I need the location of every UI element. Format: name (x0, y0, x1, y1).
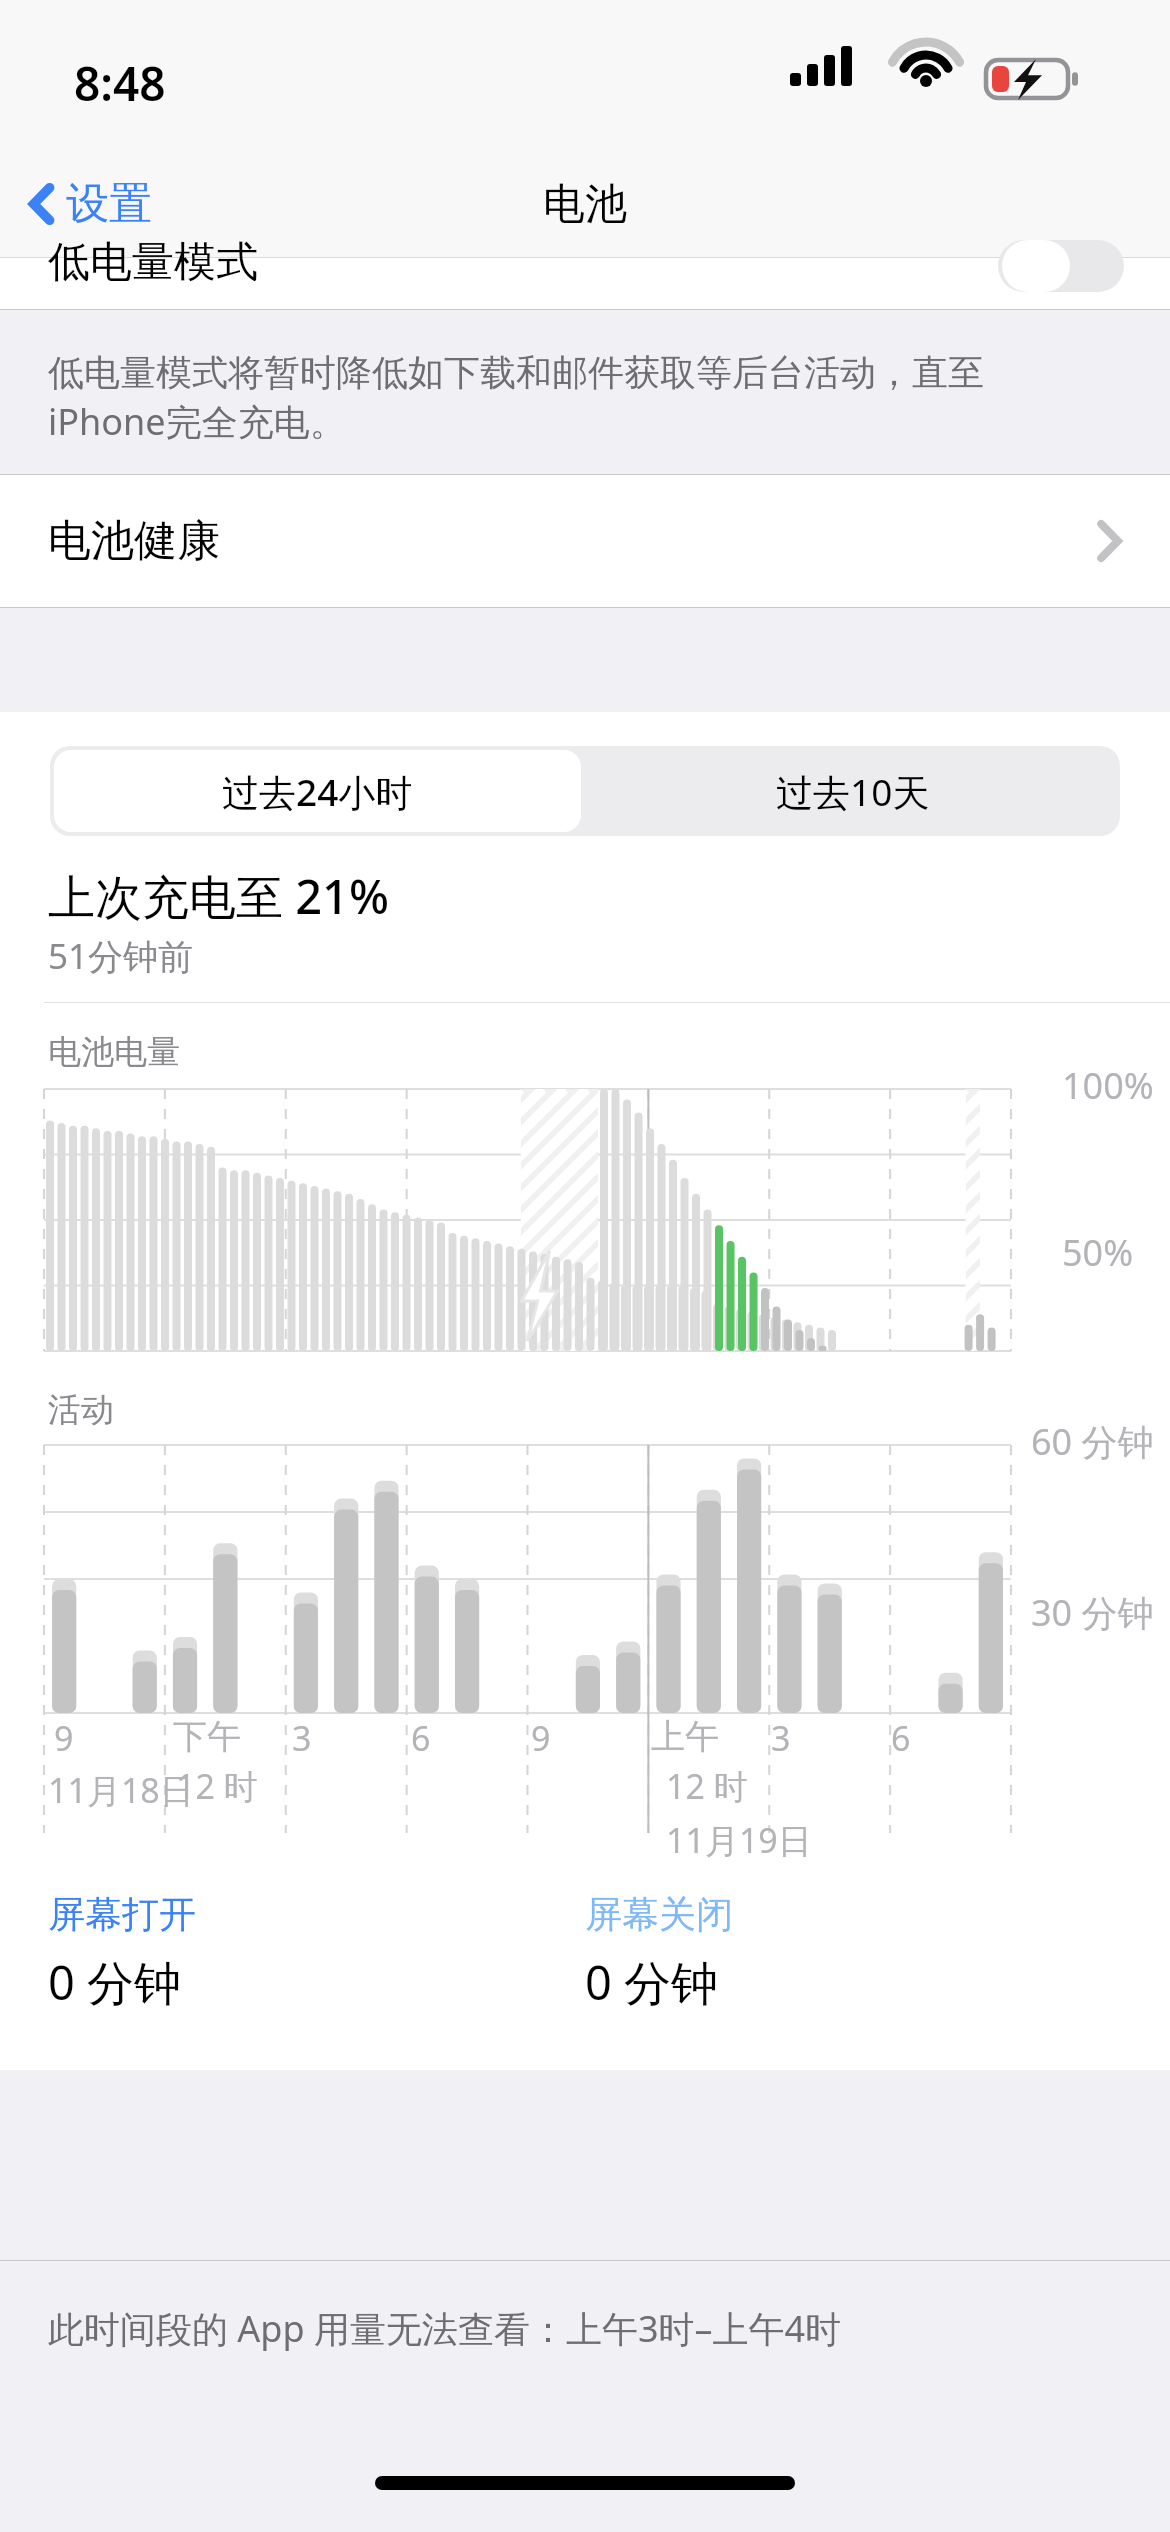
staticText: 电池电量 (48, 1031, 180, 1073)
staticText: 过去10天 (776, 766, 930, 817)
staticText: 11月18日 (48, 1767, 194, 1813)
other: 低电量模式 (998, 240, 1124, 292)
staticText: 30 分钟 (1031, 1588, 1154, 1637)
staticText: 12 时 (176, 1763, 258, 1809)
staticText: 0 分钟 (585, 1950, 719, 2014)
staticText: 51分钟前 (48, 932, 194, 980)
staticText: 屏幕打开 (48, 1891, 196, 1938)
button[interactable]: 屏幕关闭 (585, 1891, 1122, 2014)
staticText: 低电量模式将暂时降低如下载和邮件获取等后台活动，直至 iPhone完全充电。 (48, 350, 984, 445)
staticText: 此时间段的 App 用量无法查看：上午3时–上午4时 (48, 2304, 842, 2353)
button[interactable]: 屏幕打开 (48, 1891, 585, 2014)
staticText: 活动 (48, 1389, 114, 1431)
staticText: 屏幕关闭 (585, 1891, 733, 1938)
button[interactable]: 设置 (0, 167, 170, 241)
staticText: 设置 (66, 177, 152, 231)
button[interactable]: 电池健康 (0, 474, 1170, 608)
staticText: 6 (891, 1715, 911, 1761)
staticText: 11月19日 (666, 1817, 812, 1863)
staticText: 100% (1062, 1061, 1154, 1110)
staticText: 3 (771, 1715, 791, 1761)
staticText: 电池 (543, 178, 627, 231)
button[interactable]: 低电量模式 (0, 258, 1170, 310)
staticText: 0 分钟 (48, 1950, 182, 2014)
staticText: 9 (54, 1715, 74, 1761)
staticText: 3 (292, 1715, 312, 1761)
staticText: 下午 (173, 1715, 241, 1758)
staticText: 12 时 (666, 1763, 748, 1809)
staticText: 9 (531, 1715, 551, 1761)
staticText: 电池健康 (48, 514, 220, 568)
button[interactable]: 过去10天 (585, 746, 1120, 836)
button[interactable]: 过去24小时 (54, 750, 581, 832)
staticText: 60 分钟 (1031, 1417, 1154, 1466)
staticText: 上次充电至 21% (48, 864, 390, 928)
staticText: 6 (411, 1715, 431, 1761)
staticText: 50% (1062, 1228, 1134, 1277)
staticText: 8:48 (74, 52, 166, 115)
staticText: 上午 (651, 1715, 719, 1758)
staticText: 低电量模式 (48, 236, 258, 288)
staticText: 过去24小时 (222, 766, 413, 817)
